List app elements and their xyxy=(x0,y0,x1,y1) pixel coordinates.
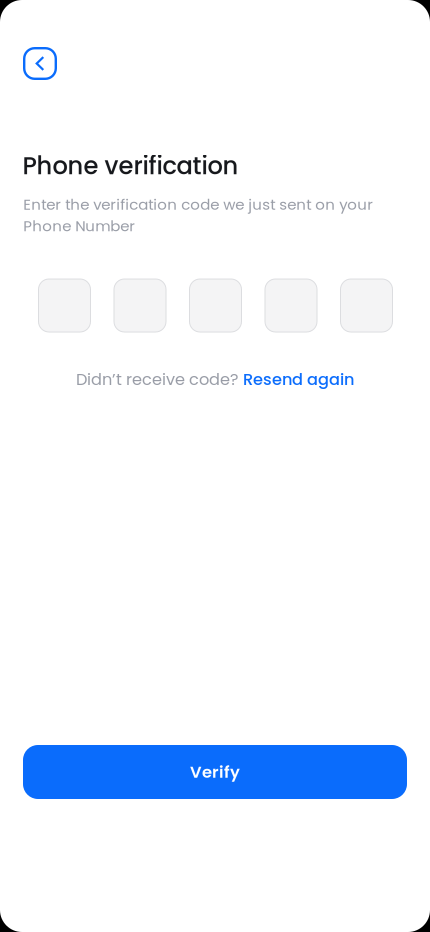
button[interactable]: Verification code digit xyxy=(38,279,90,332)
button[interactable]: Verification code digit xyxy=(340,279,392,332)
button[interactable]: Verification code digit xyxy=(265,279,317,332)
staticText: Phone verification xyxy=(22,149,238,183)
button[interactable]: Back xyxy=(23,47,57,80)
staticText: Resend again xyxy=(243,368,354,391)
button[interactable]: Verification code digit xyxy=(189,279,241,332)
staticText: Didn’t receive code? xyxy=(76,368,238,391)
button[interactable]: Verify xyxy=(23,745,407,799)
button[interactable]: Verification code digit xyxy=(114,279,166,332)
staticText: Verify xyxy=(190,761,240,783)
staticText: Enter the verification code we just sent… xyxy=(23,194,373,215)
staticText: Phone Number xyxy=(23,215,135,236)
button[interactable]: Resend again xyxy=(243,368,354,391)
